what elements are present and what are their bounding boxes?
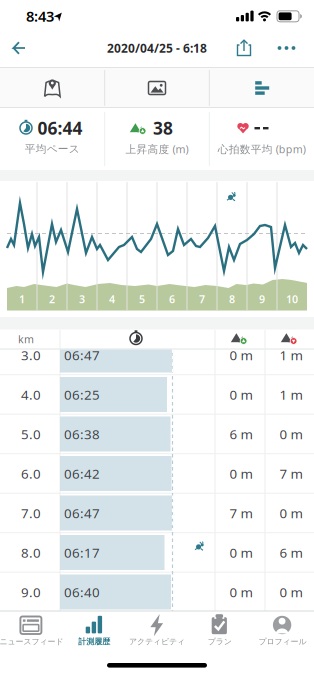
staticText: 38 (153, 116, 173, 139)
staticText: アクティビティ (129, 637, 185, 646)
staticText: 06:38 (64, 425, 100, 443)
staticText: km (18, 332, 34, 346)
staticText: 7 m (279, 465, 302, 482)
button[interactable]: Share (227, 29, 261, 67)
staticText: 06:42 (64, 465, 100, 482)
staticText: 0 m (229, 544, 252, 561)
staticText: 1 (19, 292, 25, 306)
staticText: 0 m (279, 425, 302, 443)
staticText: 0 m (279, 583, 302, 601)
staticText: 2 (49, 292, 55, 306)
staticText: ニュースフィード (0, 637, 63, 646)
staticText: 3.0 (21, 346, 41, 364)
staticText: 上昇高度 (m) (125, 142, 188, 156)
staticText: 計測履歴 (78, 637, 110, 646)
staticText: 6 m (279, 544, 302, 561)
staticText: 9 (259, 292, 265, 306)
button[interactable]: Photos (105, 69, 209, 107)
staticText: プラン (208, 637, 232, 646)
staticText: 3 (79, 292, 85, 306)
staticText: 平均ペース (25, 142, 80, 155)
staticText: 06:17 (64, 544, 100, 561)
staticText: 06:44 (37, 116, 82, 139)
staticText: 5.0 (21, 425, 41, 443)
staticText: 6 m (229, 425, 252, 443)
staticText: 8:43 (26, 6, 54, 26)
button[interactable]: Map (0, 69, 104, 107)
staticText: プロフィール (259, 637, 307, 646)
staticText: 4.0 (21, 386, 41, 403)
staticText: 0 m (279, 504, 302, 522)
button[interactable]: ニュースフィード (0, 611, 63, 661)
button[interactable]: プロフィール (251, 611, 314, 661)
staticText: 7 m (229, 504, 252, 522)
staticText: 1 m (279, 346, 302, 364)
staticText: 0 m (229, 346, 252, 364)
button[interactable]: Splits (210, 69, 314, 107)
staticText: 5 (139, 292, 145, 306)
staticText: 6 (169, 292, 175, 306)
button[interactable]: More (271, 29, 301, 67)
staticText: 06:47 (64, 504, 100, 522)
staticText: 06:40 (64, 583, 100, 601)
staticText: 8.0 (21, 544, 41, 561)
button[interactable]: Back (1, 29, 37, 67)
staticText: 10 (286, 292, 298, 306)
staticText: 7 (199, 292, 205, 306)
staticText: 2020/04/25 - 6:18 (107, 40, 207, 56)
staticText: 06:25 (64, 386, 100, 403)
staticText: 0 m (229, 386, 252, 403)
staticText: 0 m (229, 583, 252, 601)
staticText: 0 m (229, 465, 252, 482)
staticText: 9.0 (21, 583, 41, 601)
staticText: 8 (229, 292, 235, 306)
staticText: 心拍数平均 (bpm) (218, 142, 306, 156)
staticText: 4 (109, 292, 115, 306)
staticText: 06:47 (64, 346, 100, 364)
staticText: 6.0 (21, 465, 41, 482)
button[interactable]: アクティビティ (125, 611, 188, 661)
button[interactable]: プラン (188, 611, 251, 661)
staticText: 7.0 (21, 504, 41, 522)
staticText: 1 m (279, 386, 302, 403)
button[interactable]: 計測履歴 (63, 611, 126, 661)
